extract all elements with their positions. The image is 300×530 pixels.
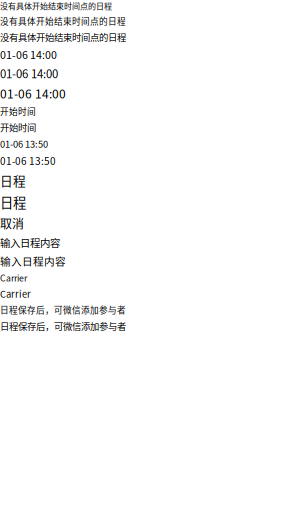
staticText: 日程 [0,171,26,189]
staticText: 取消 [0,215,24,232]
staticText: 01-06 13:50 [0,153,56,168]
staticText: 输入日程内容 [0,253,66,268]
staticText: 没有具体开始结束时间点的日程 [0,0,112,12]
staticText: 日程保存后，可微信添加参与者 [0,303,126,316]
staticText: 01-06 14:00 [0,65,58,81]
staticText: Carrier [0,271,27,284]
staticText: 没有具体开始结束时间点的日程 [0,15,126,27]
staticText: 输入日程内容 [0,235,60,250]
staticText: 日程 [0,192,26,212]
staticText: 01-06 13:50 [0,137,48,150]
staticText: 没有具体开始结束时间点的日程 [0,30,126,44]
staticText: 开始时间 [0,105,36,117]
staticText: 01-06 14:00 [0,47,57,62]
staticText: 01-06 14:00 [0,84,66,102]
staticText: Carrier [0,287,31,300]
staticText: 开始时间 [0,120,36,134]
staticText: 日程保存后，可微信添加参与者 [0,319,126,333]
